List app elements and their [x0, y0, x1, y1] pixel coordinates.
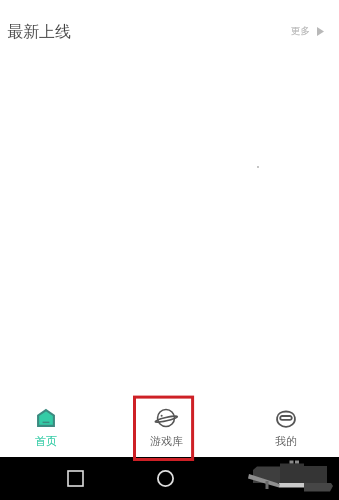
button[interactable]: Recent apps [68, 471, 83, 486]
button[interactable]: 游戏库 [110, 400, 222, 457]
staticText: 首页 [35, 434, 57, 448]
staticText: 最新上线 [7, 22, 71, 42]
button[interactable]: 首页 [0, 400, 102, 457]
staticText: 我的 [275, 434, 297, 448]
button[interactable]: 更多 [288, 22, 327, 40]
staticText: 更多 [291, 25, 310, 37]
button[interactable]: 我的 [230, 400, 339, 457]
staticText: 游戏库 [150, 434, 183, 448]
button[interactable]: Home [157, 470, 174, 487]
